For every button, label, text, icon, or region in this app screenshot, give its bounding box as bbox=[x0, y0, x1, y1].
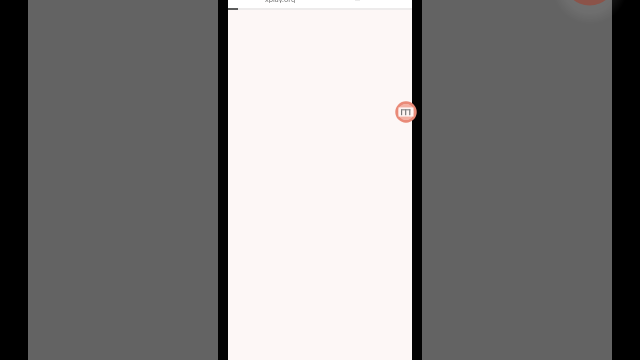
button[interactable]: Site logo bbox=[395, 101, 417, 123]
button[interactable]: xplay.org bbox=[228, 0, 412, 8]
staticText: xplay.org bbox=[265, 0, 296, 3]
